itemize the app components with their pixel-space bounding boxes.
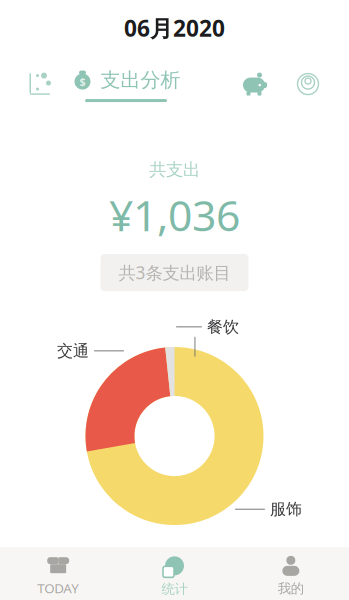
staticText: ¥1,036	[109, 186, 240, 243]
staticText: 共3条支出账目	[118, 261, 230, 284]
staticText: 支出分析	[100, 68, 180, 92]
staticText: 服饰	[270, 499, 302, 519]
staticText: 共支出	[149, 159, 200, 180]
staticText: 统计	[161, 581, 187, 597]
staticText: TODAY	[37, 579, 79, 597]
button[interactable]: 我的	[233, 548, 349, 600]
button[interactable]: 目标	[281, 62, 335, 106]
staticText: 06月2020	[124, 13, 225, 43]
button[interactable]: 收支趋势	[10, 62, 70, 106]
staticText: 我的	[278, 580, 304, 597]
staticText: $	[79, 74, 85, 89]
button[interactable]: $	[70, 61, 182, 107]
button[interactable]: 储蓄	[227, 62, 281, 106]
button[interactable]: 共3条支出账目	[100, 254, 248, 291]
button[interactable]: 统计	[116, 548, 233, 600]
staticText: 餐饮	[207, 317, 239, 337]
button[interactable]: TODAY	[0, 548, 116, 600]
staticText: 交通	[57, 341, 89, 361]
